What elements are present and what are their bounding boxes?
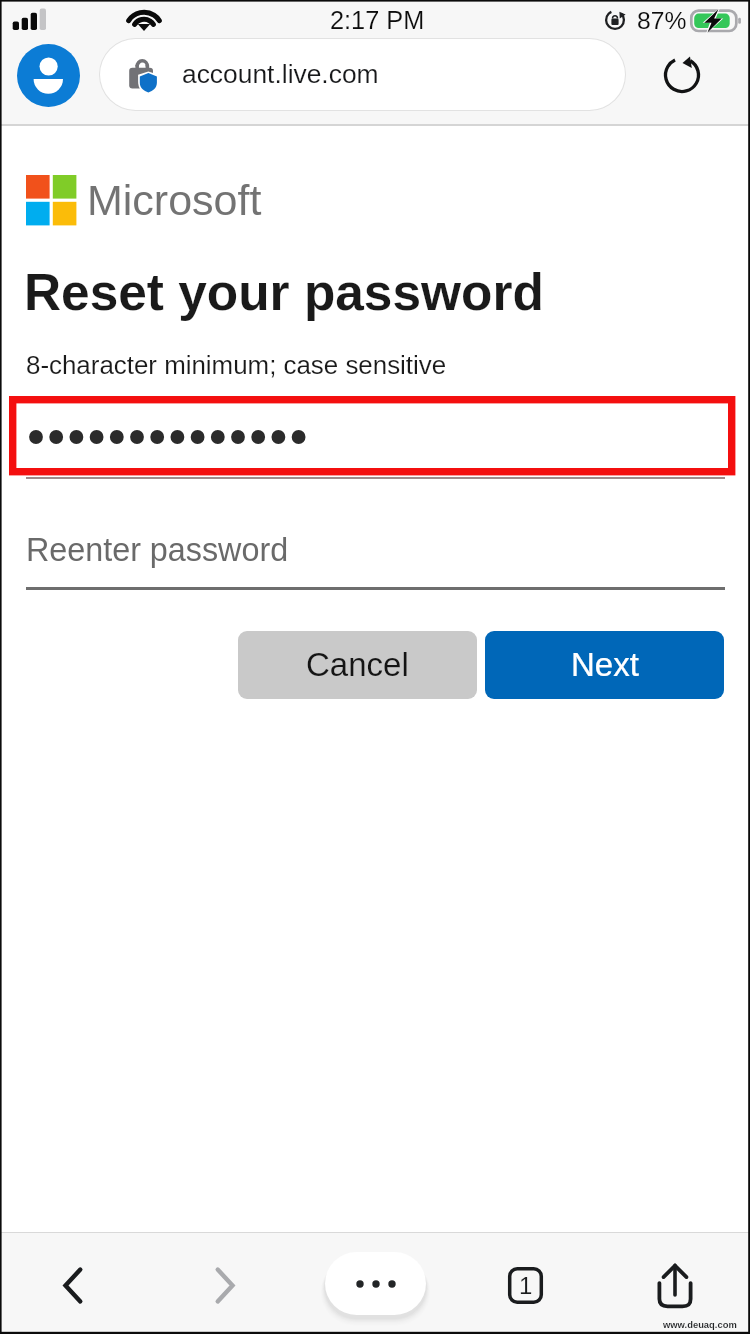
button[interactable]: Back: [42, 1252, 104, 1314]
staticText: 87%: [637, 7, 687, 35]
button[interactable]: Account: [17, 44, 80, 107]
button[interactable]: More options: [325, 1252, 426, 1315]
button[interactable]: Forward: [194, 1252, 256, 1314]
button[interactable]: Cancel: [238, 631, 477, 699]
button[interactable]: account.live.com: [99, 38, 626, 111]
button[interactable]: Tabs: [494, 1254, 556, 1316]
staticText: Next: [571, 646, 639, 683]
button[interactable]: Reload: [655, 48, 709, 102]
staticText: Microsoft: [87, 176, 262, 224]
staticText: Reenter password: [26, 532, 289, 568]
staticText: Reset your password: [24, 263, 544, 320]
button[interactable]: Share: [644, 1256, 706, 1318]
staticText: 2:17 PM: [330, 6, 425, 34]
staticText: www.deuaq.com: [663, 1319, 737, 1330]
staticText: 8-character minimum; case sensitive: [26, 351, 447, 380]
staticText: Cancel: [306, 646, 409, 683]
staticText: 1: [519, 1272, 533, 1299]
button[interactable]: Next: [485, 631, 724, 699]
staticText: account.live.com: [182, 59, 379, 88]
